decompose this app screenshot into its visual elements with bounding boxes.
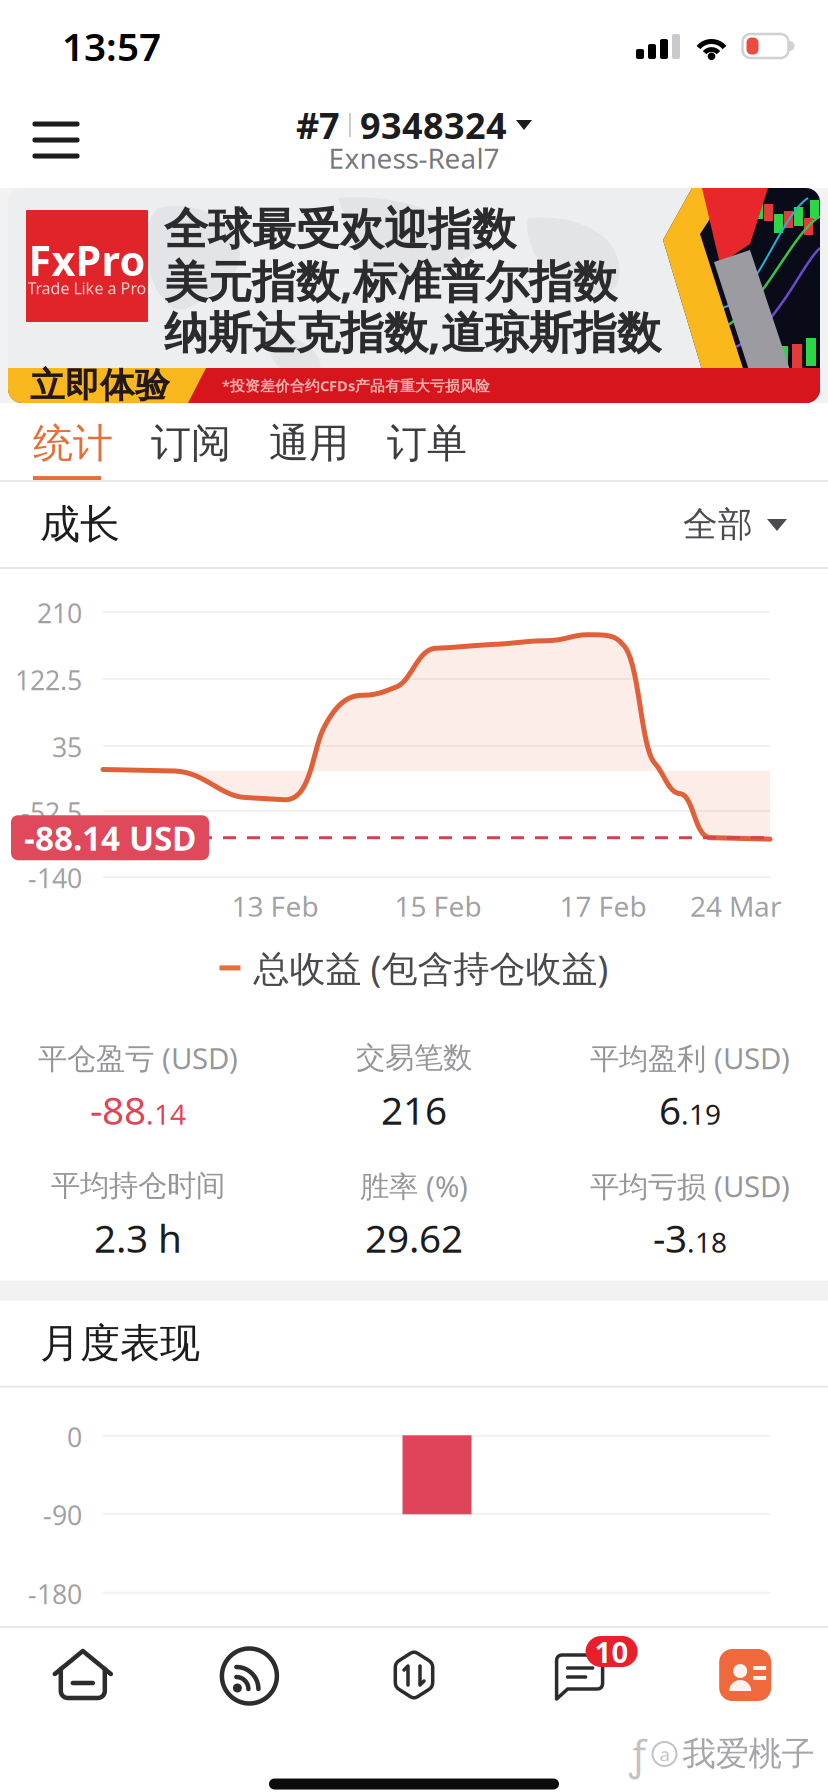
button[interactable]: Accounts <box>662 1630 828 1720</box>
staticText: 平均持仓时间 <box>51 1168 225 1204</box>
button[interactable]: 通用 <box>269 403 387 480</box>
staticText: 立即体验 <box>30 364 170 407</box>
button[interactable]: 统计 <box>33 403 151 480</box>
button[interactable]: Quotes <box>0 1630 166 1720</box>
staticText: #7 <box>296 101 340 149</box>
staticText: 17 Feb <box>559 887 646 925</box>
button[interactable]: Messages <box>497 1630 662 1720</box>
staticText: 10 <box>595 1632 629 1671</box>
staticText: 通用 <box>269 419 349 468</box>
staticText: 13:57 <box>62 20 161 72</box>
staticText: .14 <box>146 1095 186 1132</box>
staticText: 胜率 (%) <box>360 1166 468 1205</box>
staticText: 2.3 h <box>94 1212 182 1263</box>
staticText: 交易笔数 <box>356 1040 472 1076</box>
button[interactable]: 全部 <box>683 503 784 546</box>
staticText: .19 <box>681 1095 721 1132</box>
staticText: FxPro <box>28 233 145 287</box>
staticText: 216 <box>381 1084 447 1135</box>
staticText: 全部 <box>683 503 753 546</box>
staticText: 13 Feb <box>231 887 318 925</box>
staticText: .18 <box>687 1223 727 1260</box>
staticText: 成长 <box>40 500 120 549</box>
staticText: Exness-Real7 <box>328 139 499 177</box>
staticText: 24 Mar <box>690 887 782 925</box>
staticText: 统计 <box>33 419 113 468</box>
staticText: 订阅 <box>151 419 231 468</box>
staticText: 平仓盈亏 (USD) <box>38 1038 238 1077</box>
staticText: ƒ <box>629 1727 646 1780</box>
staticText: -90 <box>43 1497 82 1532</box>
button[interactable]: 订单 <box>387 403 505 480</box>
staticText: 210 <box>37 595 82 631</box>
button[interactable]: Menu <box>8 92 104 188</box>
staticText: 平均亏损 (USD) <box>590 1166 790 1205</box>
staticText: 全球最受欢迎指数 <box>164 202 516 256</box>
staticText: -88.14 USD <box>24 816 196 860</box>
staticText: 平均盈利 (USD) <box>590 1038 790 1077</box>
staticText: Trade Like a Pro <box>27 277 146 299</box>
button[interactable]: #7 <box>296 107 532 173</box>
staticText: 总收益 (包含持仓收益) <box>253 944 608 992</box>
staticText: -180 <box>28 1576 82 1611</box>
staticText: 9348324 <box>360 101 507 149</box>
staticText: 美元指数,标准普尔指数 <box>164 251 617 310</box>
staticText: 我爱桃子 <box>682 1733 814 1774</box>
button[interactable]: FxPro <box>0 188 828 403</box>
staticText: 29.62 <box>365 1212 463 1263</box>
staticText: 月度表现 <box>40 1319 200 1368</box>
staticText: 纳斯达克指数,道琼斯指数 <box>164 302 661 361</box>
staticText: 35 <box>52 729 82 765</box>
staticText: -3 <box>653 1212 687 1263</box>
staticText: 15 Feb <box>394 887 481 925</box>
staticText: 122.5 <box>15 662 82 698</box>
staticText: 订单 <box>387 419 467 468</box>
button[interactable]: Signals <box>166 1630 331 1720</box>
staticText: -52.5 <box>21 794 82 830</box>
staticText: 0 <box>67 1419 82 1454</box>
button[interactable]: Trade <box>331 1630 497 1720</box>
button[interactable]: 订阅 <box>151 403 269 480</box>
staticText: -140 <box>28 860 82 896</box>
staticText: *投资差价合约CFDs产品有重大亏损风险 <box>222 376 490 395</box>
staticText: a <box>659 1742 669 1766</box>
staticText: -88 <box>90 1084 146 1135</box>
staticText: 6 <box>659 1084 681 1135</box>
